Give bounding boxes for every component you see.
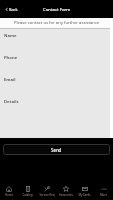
staticText: Catalog	[22, 193, 33, 197]
other: Service Request	[44, 186, 50, 192]
button[interactable]: Home	[0, 184, 18, 200]
staticText: Name	[4, 33, 17, 39]
staticText: Please contact us for any further assist…	[14, 20, 100, 26]
button[interactable]: My Cards	[75, 184, 94, 200]
other: Catalog	[25, 186, 31, 192]
other: More	[101, 186, 107, 192]
button[interactable]: Service Request	[37, 184, 56, 200]
staticText: Service Req	[39, 193, 55, 197]
button[interactable]: More	[94, 184, 113, 200]
staticText: Phone	[4, 55, 18, 61]
staticText: Send	[51, 147, 62, 153]
staticText: Contact Form	[43, 6, 71, 12]
staticText: Email	[4, 77, 16, 83]
other: My Cards	[82, 186, 88, 192]
staticText: Details	[4, 99, 19, 105]
staticText: More	[100, 193, 107, 197]
button[interactable]: Catalog	[18, 184, 37, 200]
staticText: My Cards	[78, 193, 91, 197]
button[interactable]: Send	[3, 144, 110, 155]
other: Home	[6, 186, 12, 192]
staticText: Home	[5, 193, 13, 197]
staticText: Back	[9, 7, 18, 12]
button[interactable]: Favourites	[56, 184, 75, 200]
staticText: Favourites	[59, 193, 73, 197]
button[interactable]: Back	[5, 7, 18, 12]
other: Favourites	[63, 186, 69, 192]
